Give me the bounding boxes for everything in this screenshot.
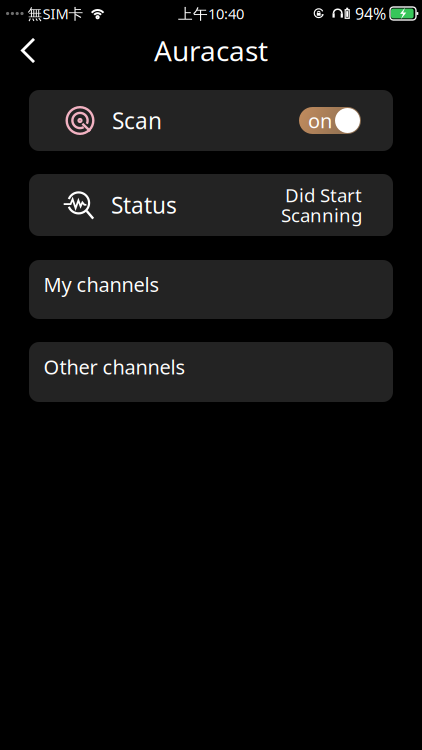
staticText: My channels bbox=[43, 271, 159, 297]
staticText: Status bbox=[111, 190, 177, 220]
button[interactable]: Scan, on bbox=[299, 107, 361, 134]
staticText: on bbox=[308, 107, 332, 134]
staticText: Scanning bbox=[281, 202, 362, 227]
staticText: 無SIM卡 bbox=[28, 4, 84, 23]
staticText: 上午10:40 bbox=[178, 4, 244, 23]
staticText: Scan bbox=[112, 105, 162, 135]
staticText: Did Start bbox=[285, 183, 362, 207]
staticText: 94% bbox=[355, 3, 386, 24]
staticText: Other channels bbox=[43, 353, 185, 380]
button[interactable]: Other channels bbox=[29, 342, 393, 402]
button[interactable]: Back bbox=[0, 27, 49, 71]
button[interactable]: My channels bbox=[29, 260, 393, 319]
staticText: Auracast bbox=[154, 32, 268, 69]
